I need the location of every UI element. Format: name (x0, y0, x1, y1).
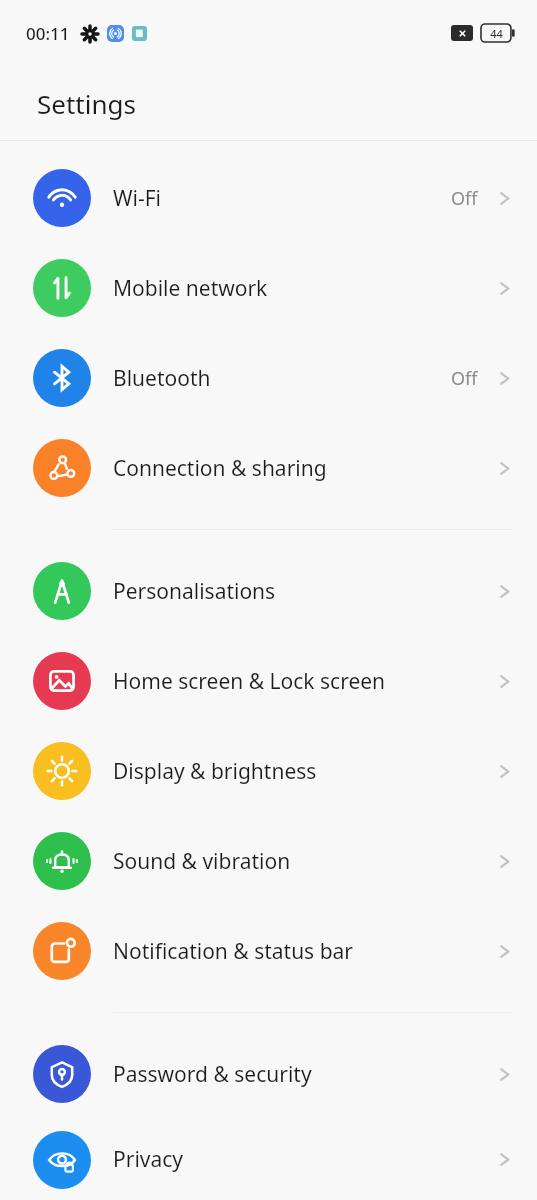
button[interactable]: Home screen & Lock screen (0, 636, 537, 726)
staticText: Password & security (113, 1060, 496, 1089)
staticText: Mobile network (113, 274, 496, 303)
staticText: Connection & sharing (113, 454, 496, 483)
staticText: 44 (490, 26, 503, 41)
button[interactable]: Display & brightness (0, 726, 537, 816)
staticText: Sound & vibration (113, 847, 496, 876)
staticText: Off (451, 186, 478, 211)
staticText: Home screen & Lock screen (113, 667, 496, 696)
staticText: Notification & status bar (113, 937, 496, 966)
staticText: 00:11 (26, 22, 70, 45)
button[interactable]: Privacy (0, 1119, 537, 1200)
staticText: Display & brightness (113, 757, 496, 786)
staticText: Privacy (113, 1145, 496, 1174)
staticText: Settings (37, 86, 136, 121)
button[interactable]: Password & security (0, 1029, 537, 1119)
staticText: Wi-Fi (113, 184, 451, 213)
button[interactable]: Connection & sharing (0, 423, 537, 513)
button[interactable]: Personalisations (0, 546, 537, 636)
button[interactable]: Mobile network (0, 243, 537, 333)
staticText: Off (451, 366, 478, 391)
button[interactable]: Notification & status bar (0, 906, 537, 996)
staticText: Bluetooth (113, 364, 451, 393)
button[interactable]: Sound & vibration (0, 816, 537, 906)
button[interactable]: Bluetooth (0, 333, 537, 423)
button[interactable]: Wi-Fi (0, 153, 537, 243)
staticText: Personalisations (113, 577, 496, 606)
